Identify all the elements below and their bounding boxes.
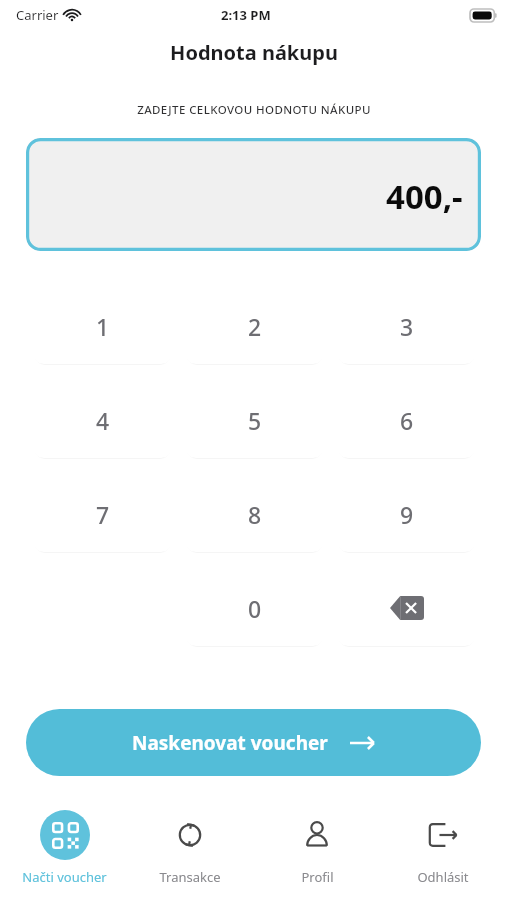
staticText: ZADEJTE CELKOVOU HODNOTU NÁKUPU xyxy=(137,102,371,118)
button[interactable]: 9 xyxy=(337,476,476,552)
button[interactable]: Načti voucher xyxy=(1,808,127,892)
staticText: 2 xyxy=(248,311,262,342)
staticText: 4 xyxy=(96,405,110,436)
button[interactable]: 1 xyxy=(33,288,172,364)
staticText: Carrier xyxy=(16,6,59,24)
button[interactable]: Transakce xyxy=(127,808,253,892)
staticText: 2:13 PM xyxy=(221,6,271,24)
staticText: Transakce xyxy=(159,868,221,886)
staticText: Naskenovat voucher xyxy=(132,730,328,756)
button[interactable]: Naskenovat voucher xyxy=(26,709,481,776)
button[interactable]: 8 xyxy=(185,476,324,552)
staticText: 8 xyxy=(248,499,262,530)
staticText: 7 xyxy=(96,499,110,530)
staticText: Odhlásit xyxy=(417,868,469,886)
staticText: Načti voucher xyxy=(22,868,107,886)
staticText: 9 xyxy=(400,499,414,530)
other: Transakce xyxy=(175,820,205,850)
button[interactable]: 3 xyxy=(337,288,476,364)
button[interactable]: Odhlásit xyxy=(380,808,506,892)
button[interactable]: 7 xyxy=(33,476,172,552)
other: Profil xyxy=(302,820,332,850)
other: Načti voucher xyxy=(40,810,90,860)
button[interactable]: 0 xyxy=(185,570,324,646)
button[interactable]: 6 xyxy=(337,382,476,458)
staticText: Profil xyxy=(301,868,334,886)
staticText: 5 xyxy=(248,405,262,436)
button[interactable]: 4 xyxy=(33,382,172,458)
staticText: 3 xyxy=(400,311,414,342)
staticText: 6 xyxy=(400,405,414,436)
button[interactable]: 5 xyxy=(185,382,324,458)
button[interactable]: 2 xyxy=(185,288,324,364)
staticText: Hodnota nákupu xyxy=(170,39,338,66)
button[interactable]: 400,- xyxy=(26,138,481,251)
staticText: 0 xyxy=(248,593,262,624)
other: Odhlásit xyxy=(428,820,458,850)
button[interactable]: Profil xyxy=(254,808,380,892)
staticText: 1 xyxy=(96,311,110,342)
staticText: 400,- xyxy=(386,174,463,219)
button[interactable]: Backspace xyxy=(337,570,476,646)
